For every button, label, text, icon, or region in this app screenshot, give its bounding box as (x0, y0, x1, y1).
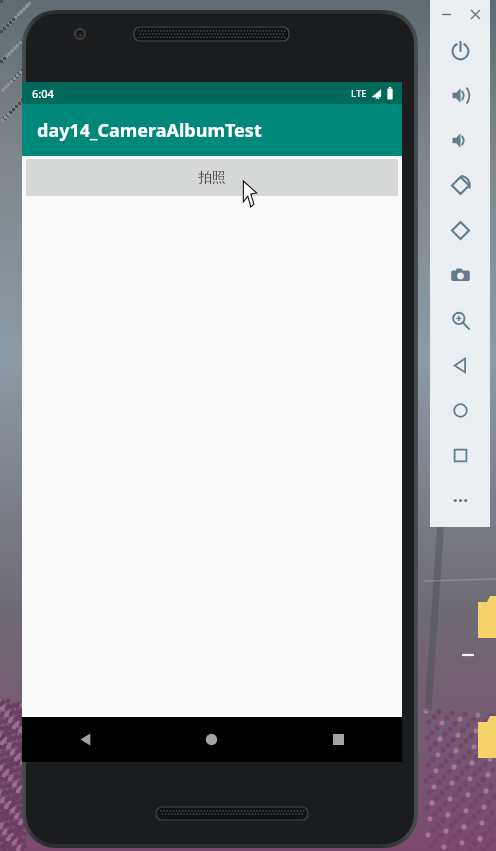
button[interactable]: Recent apps (275, 717, 402, 762)
button[interactable]: Volume up (430, 73, 490, 118)
button[interactable]: Close (467, 6, 483, 22)
button[interactable]: Home (148, 717, 275, 762)
button[interactable]: Zoom (430, 298, 490, 343)
button[interactable]: Power (430, 28, 490, 73)
button[interactable]: Volume down (430, 118, 490, 163)
button[interactable]: Overview (430, 433, 490, 478)
button[interactable]: Rotate right (430, 208, 490, 253)
button[interactable]: Home (430, 388, 490, 433)
button[interactable]: Minimize (438, 6, 454, 22)
staticText: 拍照 (198, 169, 226, 187)
button[interactable]: Back (22, 717, 148, 762)
button[interactable]: Screenshot (430, 253, 490, 298)
staticText: day14_CameraAlbumTest (37, 118, 262, 143)
button[interactable]: 拍照 (26, 159, 398, 196)
button[interactable]: More (430, 478, 490, 523)
staticText: LTE (351, 87, 367, 100)
staticText: 6:04 (32, 86, 54, 101)
button[interactable]: Back (430, 343, 490, 388)
button[interactable]: Rotate left (430, 163, 490, 208)
